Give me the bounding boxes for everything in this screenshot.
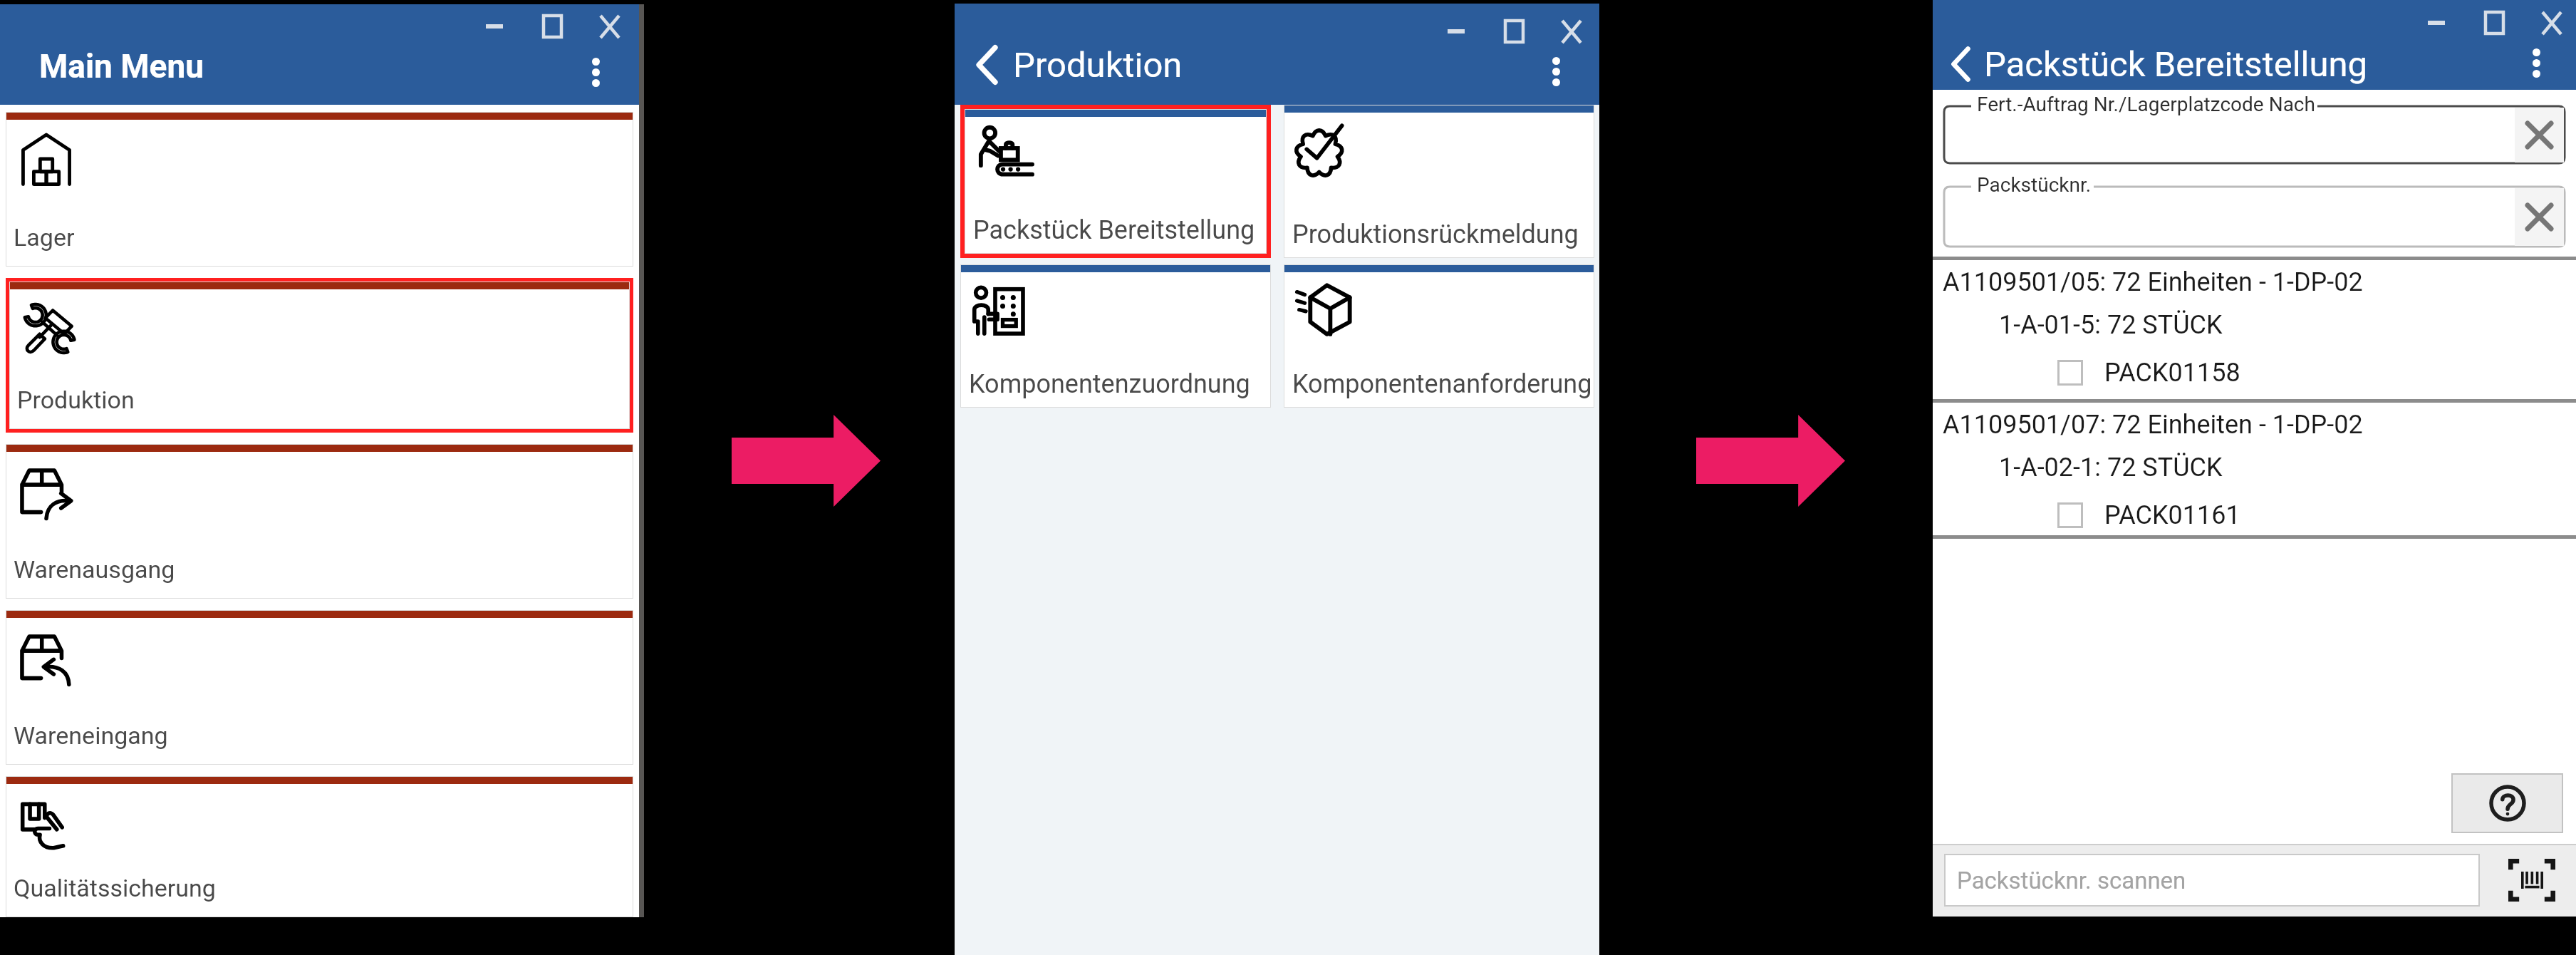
staticText: Packstücknr. (1977, 173, 2092, 197)
staticText: Main Menu (39, 47, 204, 86)
button[interactable]: Packstück Bereitstellung (960, 105, 1271, 258)
staticText: Komponentenzuordnung (969, 369, 1250, 399)
button[interactable]: PACK01161 (2057, 500, 2576, 530)
button[interactable]: Maximize (1492, 10, 1535, 53)
staticText: Lager (14, 223, 75, 252)
button[interactable]: Komponentenanforderung (1284, 264, 1594, 408)
button[interactable]: Close (588, 5, 631, 48)
staticText: Packstück Bereitstellung (973, 215, 1255, 245)
staticText: Packstück Bereitstellung (1984, 44, 2368, 85)
button[interactable]: Minimize (2415, 1, 2458, 44)
staticText: Komponentenanforderung (1292, 369, 1592, 399)
button[interactable]: Qualitätssicherung (6, 776, 633, 917)
button[interactable]: Scan barcode (2500, 848, 2564, 912)
button[interactable]: Close (2530, 1, 2573, 44)
button[interactable]: Back (965, 43, 1009, 87)
button[interactable]: Help (2451, 773, 2563, 833)
staticText: PACK01161 (2104, 500, 2240, 530)
button[interactable]: More options (2516, 43, 2556, 83)
button[interactable]: Produktion (6, 278, 633, 433)
button[interactable]: Clear (2515, 188, 2564, 246)
staticText: A1109501/05: 72 Einheiten - 1-DP-02 (1943, 267, 2363, 297)
staticText: Produktion (1013, 45, 1183, 86)
staticText: Warenausgang (14, 555, 175, 584)
button[interactable]: Close (1550, 10, 1593, 53)
staticText: Wareneingang (14, 721, 168, 750)
staticText: 1-A-01-5: 72 STÜCK (1999, 310, 2223, 340)
staticText: 1-A-02-1: 72 STÜCK (1999, 453, 2223, 482)
button[interactable]: Minimize (473, 5, 516, 48)
button[interactable]: More options (576, 52, 616, 92)
button[interactable]: Wareneingang (6, 610, 633, 765)
staticText: Produktionsrückmeldung (1292, 220, 1579, 249)
staticText: Packstücknr. scannen (1957, 867, 2186, 894)
staticText: A1109501/07: 72 Einheiten - 1-DP-02 (1943, 410, 2363, 440)
button[interactable]: Lager (6, 112, 633, 267)
button[interactable]: Maximize (531, 5, 573, 48)
button[interactable]: Maximize (2473, 1, 2515, 44)
button[interactable]: Warenausgang (6, 444, 633, 599)
staticText: Fert.-Auftrag Nr./Lagerplatzcode Nach (1977, 93, 2315, 116)
staticText: Qualitätssicherung (14, 874, 216, 902)
button[interactable]: Produktionsrückmeldung (1284, 105, 1594, 258)
staticText: Produktion (17, 386, 135, 414)
button[interactable]: Back (1938, 42, 1983, 86)
staticText: PACK01158 (2104, 358, 2240, 388)
button[interactable]: Minimize (1435, 10, 1477, 53)
button[interactable]: PACK01158 (2057, 358, 2576, 388)
button[interactable]: Clear (2515, 108, 2564, 162)
button[interactable]: More options (1536, 51, 1576, 91)
button[interactable]: Komponentenzuordnung (960, 264, 1271, 408)
button[interactable]: Packstücknr. scannen (1944, 854, 2480, 907)
